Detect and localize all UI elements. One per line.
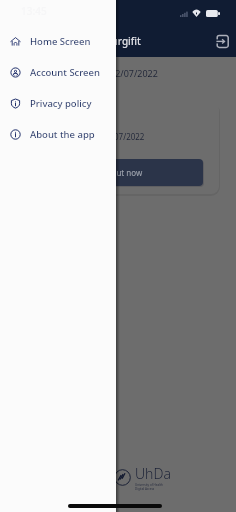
button[interactable]: About the app: [0, 119, 116, 150]
staticText: University of Health: [135, 483, 163, 487]
staticText: 07/2022: [114, 131, 145, 142]
button[interactable]: Account Screen: [0, 57, 116, 88]
staticText: Try it out now: [91, 167, 143, 178]
staticText: Digital Access: [135, 487, 155, 491]
staticText: UhDa: [135, 464, 171, 483]
button[interactable]: Logout: [215, 34, 229, 48]
staticText: 22/07/2022: [110, 67, 158, 79]
staticText: Surgifit: [106, 34, 141, 48]
button[interactable]: Privacy policy: [0, 88, 116, 119]
staticText: Home Screen: [30, 35, 91, 48]
button[interactable]: Try it out now: [31, 159, 203, 186]
staticText: About the app: [30, 128, 95, 141]
staticText: Account Screen: [30, 66, 100, 79]
staticText: Privacy policy: [30, 97, 92, 110]
button[interactable]: Home Screen: [0, 26, 116, 57]
